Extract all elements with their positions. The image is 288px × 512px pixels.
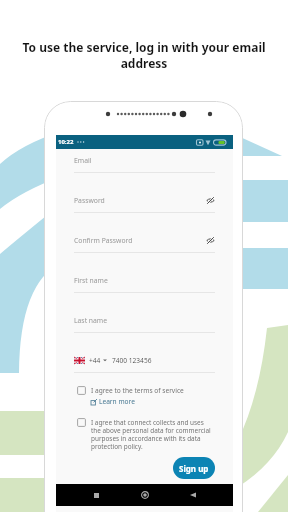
staticText: 10:22 (58, 138, 74, 146)
staticText: 7400 123456 (112, 356, 152, 365)
button[interactable]: I agree to the terms of service (77, 386, 219, 406)
button[interactable]: Back (184, 486, 202, 504)
button[interactable]: Sign up (173, 457, 215, 479)
staticText: Password (74, 196, 105, 205)
button[interactable]: Password (56, 173, 233, 213)
button[interactable]: +44 (56, 333, 233, 373)
staticText: Learn more (99, 397, 135, 406)
staticText: I agree that connect collects and uses t… (91, 418, 211, 451)
button[interactable]: First name (56, 253, 233, 293)
staticText: First name (74, 276, 108, 285)
staticText: Email (74, 156, 92, 165)
button[interactable]: Recent apps (87, 486, 105, 504)
button[interactable]: Email (56, 149, 233, 173)
button[interactable]: Home (136, 486, 154, 504)
button[interactable]: Confirm Password (56, 213, 233, 253)
staticText: Last name (74, 316, 108, 325)
button[interactable]: I agree that connect collects and uses t… (77, 418, 233, 451)
staticText: I agree to the terms of service (91, 386, 184, 395)
staticText: +44 (89, 356, 101, 365)
staticText: Sign up (179, 463, 209, 474)
staticText: To use the service, log in with your ema… (22, 39, 266, 72)
staticText: Confirm Password (74, 236, 133, 245)
other: Show password (206, 236, 215, 245)
other: Show password (206, 196, 215, 205)
button[interactable]: Last name (56, 293, 233, 333)
